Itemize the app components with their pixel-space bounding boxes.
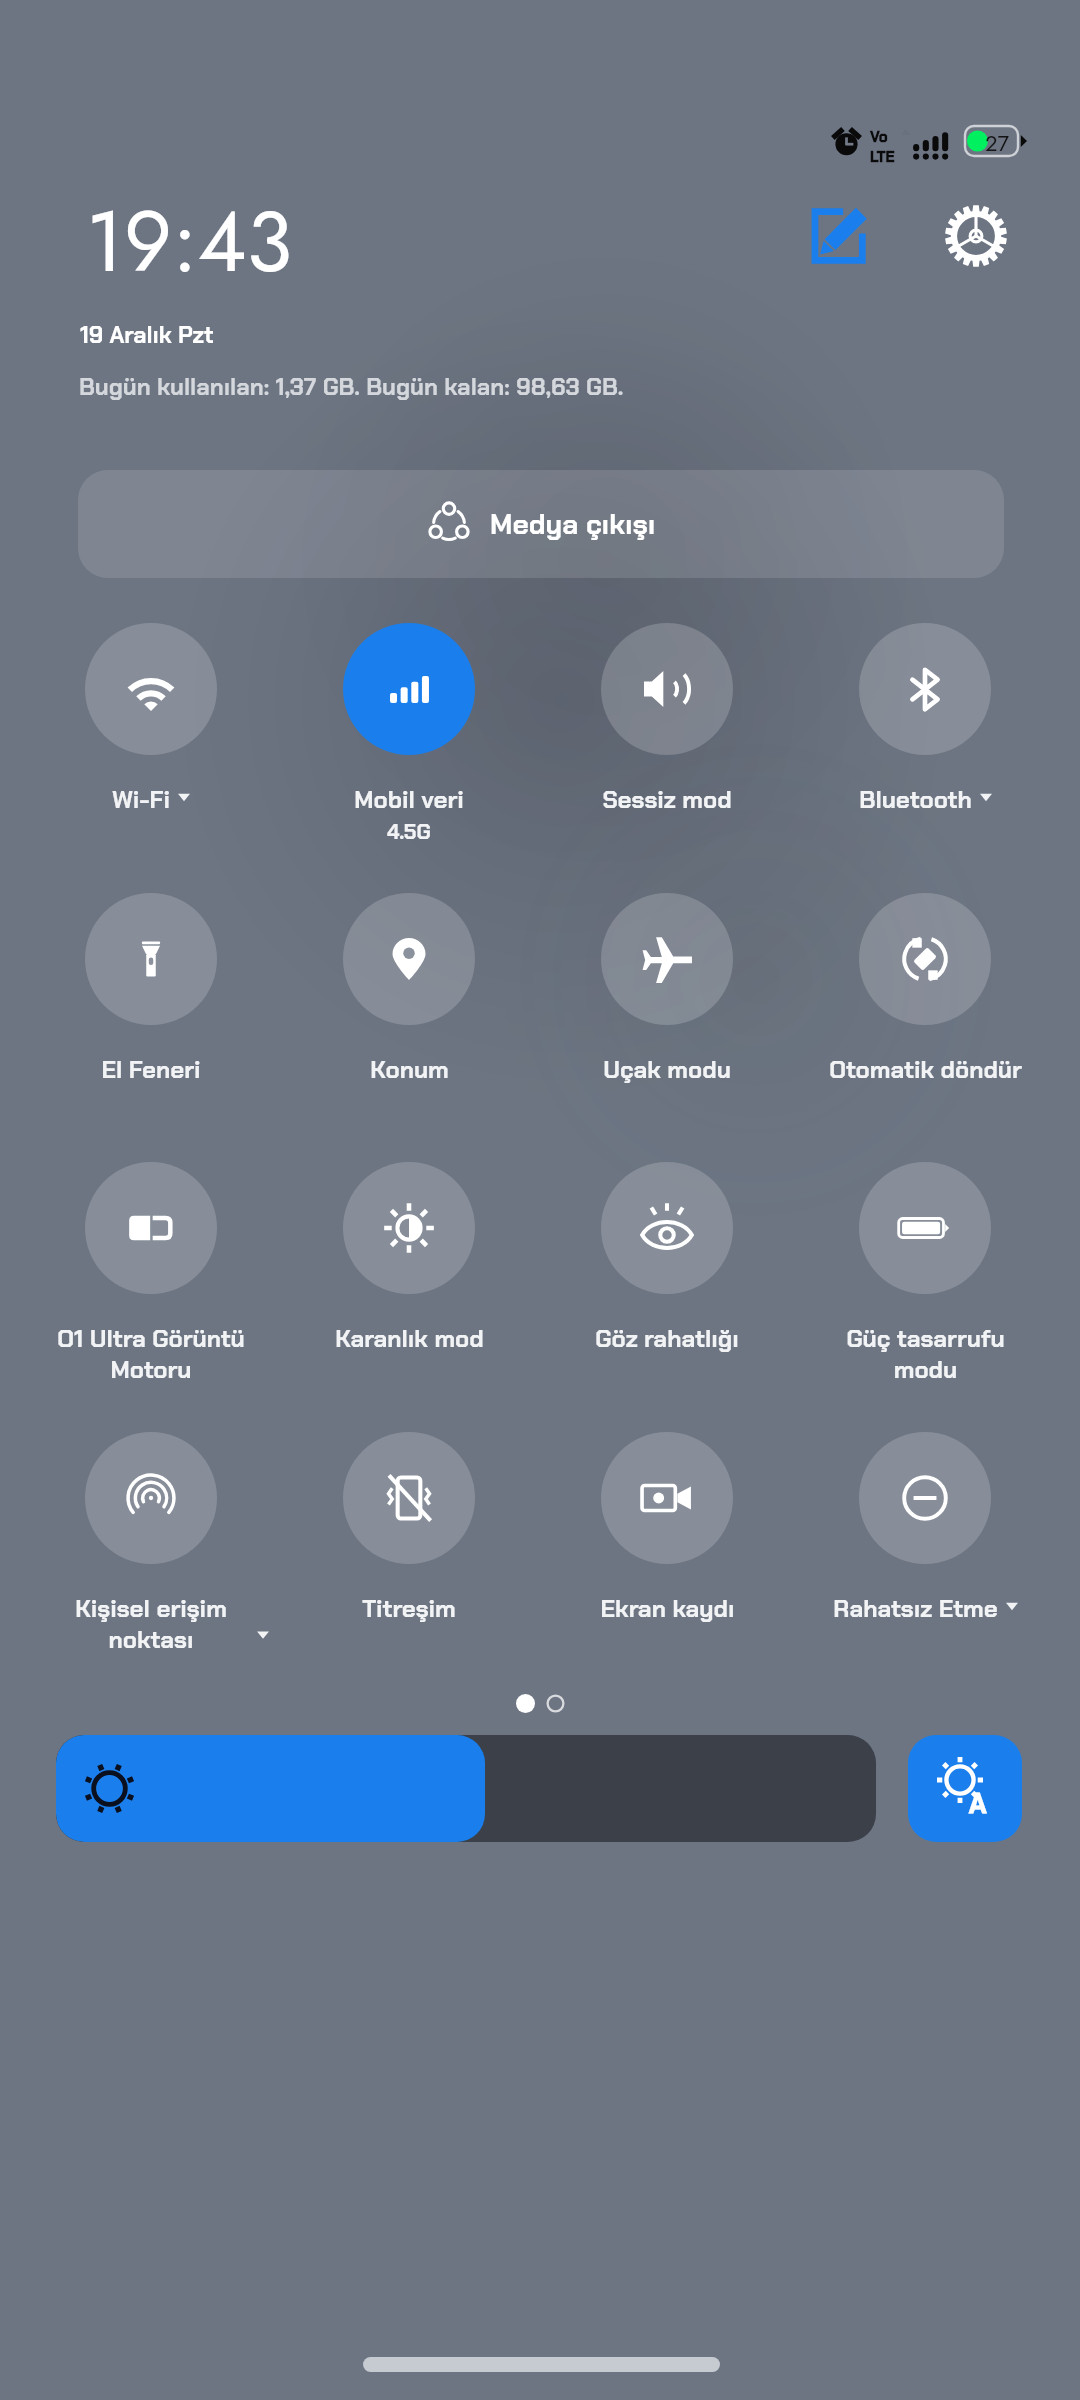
button[interactable]: Karanlık mod [280, 1152, 538, 1410]
button[interactable]: O1 Ultra Görüntü Motoru [22, 1152, 280, 1410]
staticText: Kişisel erişim noktası [75, 1593, 227, 1656]
staticText: 27 [985, 127, 1010, 159]
staticText: Mobil veri [354, 784, 464, 815]
staticText: Bluetooth [859, 784, 972, 815]
staticText: 4.5G [387, 818, 431, 845]
staticText: LTE [870, 147, 895, 167]
button[interactable]: Bluetooth [796, 613, 1054, 871]
button[interactable]: Ekran kaydı [538, 1422, 796, 1680]
button[interactable]: Edit quick settings [790, 188, 886, 284]
button[interactable]: Settings [928, 188, 1024, 284]
staticText: Wi-Fi [112, 784, 170, 815]
button[interactable]: Uçak modu [538, 883, 796, 1141]
button[interactable]: Güç tasarrufu modu [796, 1152, 1054, 1410]
staticText: 19:43 [86, 181, 293, 302]
button[interactable]: Titreşim [280, 1422, 538, 1680]
staticText: Karanlık mod [335, 1323, 484, 1354]
staticText: Otomatik döndür [829, 1054, 1022, 1085]
staticText: Ekran kaydı [600, 1593, 735, 1624]
staticText: Bugün kullanılan: 1,37 GB. Bugün kalan: … [79, 372, 624, 403]
button[interactable]: Wi-Fi [22, 613, 280, 871]
staticText: Rahatsız Etme [833, 1593, 998, 1624]
staticText: Güç tasarrufu modu [846, 1323, 1005, 1386]
button[interactable]: Göz rahatlığı [538, 1152, 796, 1410]
button[interactable]: Medya çıkışı [78, 470, 1004, 578]
staticText: Konum [370, 1054, 449, 1085]
staticText: Medya çıkışı [490, 506, 656, 542]
button[interactable]: Rahatsız Etme [796, 1422, 1054, 1680]
staticText: O1 Ultra Görüntü Motoru [57, 1323, 245, 1386]
button[interactable]: Auto brightness [908, 1735, 1022, 1842]
staticText: A [969, 1786, 987, 1821]
button[interactable]: Sessiz mod [538, 613, 796, 871]
staticText: El Feneri [101, 1054, 201, 1085]
staticText: Uçak modu [603, 1054, 731, 1085]
staticText: 19 Aralık Pzt [80, 320, 214, 350]
staticText: Sessiz mod [602, 784, 732, 815]
button[interactable]: Otomatik döndür [796, 883, 1054, 1141]
staticText: Göz rahatlığı [595, 1323, 739, 1354]
button[interactable]: Brightness [56, 1735, 876, 1842]
button[interactable]: Mobil veri [280, 613, 538, 871]
button[interactable]: El Feneri [22, 883, 280, 1141]
button[interactable]: Konum [280, 883, 538, 1141]
button[interactable]: Kişisel erişim noktası [22, 1422, 280, 1680]
staticText: Vo [870, 127, 888, 147]
staticText: Titreşim [362, 1593, 456, 1624]
